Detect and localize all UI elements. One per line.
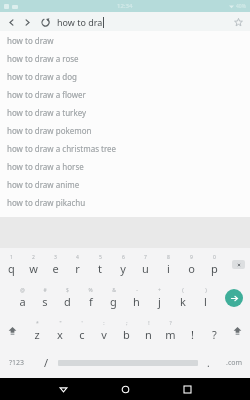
button[interactable]: Back — [32, 378, 94, 400]
button[interactable]: 4 — [66, 248, 88, 281]
staticText: t — [98, 261, 102, 276]
staticText: e — [52, 261, 59, 276]
button[interactable]: ! — [137, 314, 159, 347]
button[interactable]: ; — [115, 314, 137, 347]
button[interactable]: 3 — [44, 248, 66, 281]
button[interactable]: Backspace — [226, 248, 250, 281]
button[interactable]: @ — [11, 281, 33, 314]
button[interactable]: .com — [218, 347, 250, 378]
staticText: how to draw a christmas tree — [7, 143, 117, 154]
staticText: .com — [226, 358, 243, 368]
button[interactable]: ' — [71, 314, 93, 347]
staticText: q — [8, 261, 15, 276]
button[interactable]: Shift right — [225, 314, 250, 347]
button[interactable]: 7 — [134, 248, 157, 281]
staticText: p — [211, 261, 218, 276]
staticText: ' — [81, 320, 83, 327]
button[interactable]: 8 — [157, 248, 180, 281]
button[interactable]: 1 — [0, 248, 22, 281]
staticText: s — [42, 294, 48, 309]
staticText: how to dra — [57, 16, 103, 28]
button[interactable]: * — [25, 314, 48, 347]
staticText: 8 — [167, 254, 170, 261]
button[interactable]: Reload — [37, 14, 53, 30]
button[interactable]: - — [125, 281, 148, 314]
staticText: v — [101, 327, 107, 342]
staticText: y — [120, 261, 126, 276]
button[interactable]: ? — [203, 314, 225, 347]
button[interactable]: how to draw a horse — [0, 157, 250, 175]
staticText: ! — [148, 320, 150, 327]
button[interactable]: 9 — [180, 248, 203, 281]
staticText: how to draw pikachu — [7, 197, 86, 208]
button[interactable]: Search — [217, 281, 250, 314]
button[interactable]: + — [148, 281, 171, 314]
button[interactable]: Shift — [0, 314, 25, 347]
button[interactable]: how to draw a flower — [0, 85, 250, 103]
staticText: * — [36, 320, 39, 327]
button[interactable]: ! — [181, 314, 203, 347]
staticText: m — [165, 327, 176, 342]
staticText: 2 — [32, 254, 35, 261]
button[interactable]: $ — [56, 281, 79, 314]
staticText: $ — [66, 287, 69, 294]
button[interactable]: how to draw — [0, 31, 250, 49]
button[interactable]: " — [48, 314, 71, 347]
button[interactable]: how to draw a dog — [0, 67, 250, 85]
staticText: 5 — [99, 254, 102, 261]
staticText: h — [133, 294, 140, 309]
staticText: ! — [191, 327, 194, 342]
button[interactable]: Forward — [19, 14, 35, 30]
button[interactable]: ) — [194, 281, 217, 314]
staticText: 40% — [236, 3, 246, 10]
button[interactable]: how to draw a christmas tree — [0, 139, 250, 157]
button[interactable]: 5 — [88, 248, 111, 281]
staticText: ( — [182, 287, 184, 294]
button[interactable]: Space — [58, 347, 198, 378]
staticText: a — [19, 294, 26, 309]
button[interactable]: Bookmark — [230, 14, 246, 30]
staticText: . — [207, 356, 210, 370]
staticText: r — [75, 261, 80, 276]
staticText: ?123 — [9, 358, 25, 368]
staticText: z — [34, 327, 40, 342]
button[interactable]: : — [93, 314, 115, 347]
button[interactable]: & — [102, 281, 125, 314]
button[interactable]: how to draw a turkey — [0, 103, 250, 121]
staticText: l — [204, 294, 207, 309]
button[interactable]: 2 — [22, 248, 44, 281]
staticText: how to draw anime — [7, 179, 80, 190]
staticText: how to draw a horse — [7, 161, 84, 172]
button[interactable]: ? — [159, 314, 181, 347]
button[interactable]: # — [33, 281, 56, 314]
button[interactable]: ?123 — [0, 347, 34, 378]
staticText: o — [188, 261, 195, 276]
button[interactable]: Home — [94, 378, 156, 400]
staticText: j — [158, 294, 161, 309]
button[interactable]: how to draw anime — [0, 175, 250, 193]
staticText: c — [79, 327, 85, 342]
staticText: + — [158, 287, 161, 294]
button[interactable]: % — [79, 281, 102, 314]
staticText: how to draw — [7, 35, 54, 46]
button[interactable]: 0 — [203, 248, 226, 281]
button[interactable]: / — [34, 347, 58, 378]
staticText: 1 — [10, 254, 13, 261]
button[interactable]: how to draw pokemon — [0, 121, 250, 139]
button[interactable]: . — [198, 347, 218, 378]
staticText: n — [145, 327, 152, 342]
staticText: 12:34 — [117, 2, 133, 10]
staticText: % — [88, 287, 93, 294]
staticText: & — [112, 287, 116, 294]
button[interactable]: Back — [3, 14, 19, 30]
staticText: " — [59, 320, 62, 327]
button[interactable]: Recents — [156, 378, 218, 400]
staticText: # — [43, 287, 47, 294]
staticText: 0 — [213, 254, 216, 261]
button[interactable]: 6 — [111, 248, 134, 281]
staticText: ? — [169, 320, 172, 327]
button[interactable]: ( — [171, 281, 194, 314]
staticText: b — [123, 327, 130, 342]
button[interactable]: how to draw pikachu — [0, 193, 250, 211]
button[interactable]: how to draw a rose — [0, 49, 250, 67]
